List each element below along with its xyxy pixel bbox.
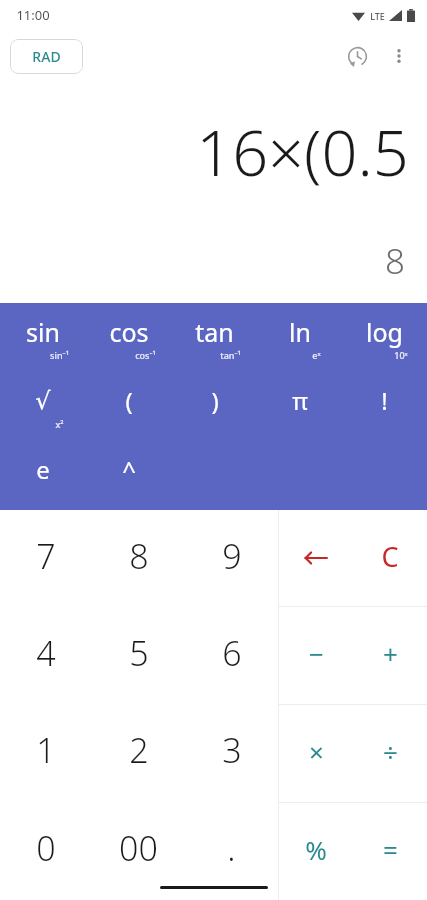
staticText: 8 (129, 533, 149, 579)
button[interactable]: log (342, 303, 427, 372)
button[interactable]: 16×(0.5 (0, 82, 427, 303)
staticText: √ (35, 387, 51, 415)
button[interactable]: sin (0, 303, 86, 372)
staticText: + (383, 636, 398, 671)
button[interactable]: 9 (185, 510, 278, 607)
button[interactable]: 6 (185, 607, 278, 704)
button[interactable]: 3 (185, 704, 278, 802)
button[interactable]: C (353, 510, 427, 606)
button[interactable]: 2 (92, 704, 185, 802)
staticText: log (366, 315, 403, 349)
staticText: ln (289, 315, 311, 349)
button[interactable]: − (279, 607, 353, 704)
staticText: ^ (122, 453, 136, 486)
staticText: 00 (119, 825, 158, 871)
staticText: e (36, 453, 50, 486)
button[interactable]: √ (0, 372, 86, 441)
button[interactable]: π (257, 372, 342, 441)
button[interactable]: More options (379, 36, 419, 76)
button[interactable]: % (279, 803, 353, 900)
button[interactable]: ( (86, 372, 172, 441)
staticText: tan (195, 315, 234, 349)
button[interactable]: + (353, 607, 427, 704)
staticText: − (309, 636, 324, 671)
staticText: 2 (129, 727, 149, 773)
staticText: 4 (36, 630, 56, 676)
staticText: 1 (36, 727, 56, 773)
button[interactable]: ln (257, 303, 342, 372)
staticText: x² (55, 418, 64, 430)
button[interactable]: 1 (0, 704, 92, 802)
button[interactable]: × (279, 705, 353, 802)
staticText: 6 (222, 630, 242, 676)
staticText: % (305, 832, 327, 867)
button[interactable]: ) (172, 372, 257, 441)
staticText: 0 (36, 825, 56, 871)
staticText: eˣ (312, 349, 321, 361)
button[interactable]: 7 (0, 510, 92, 607)
button[interactable]: ! (342, 372, 427, 441)
staticText: sin (26, 315, 60, 349)
staticText: 11:00 (16, 6, 50, 24)
button[interactable]: 00 (92, 802, 185, 900)
button[interactable]: History (335, 34, 379, 78)
staticText: 5 (129, 630, 149, 676)
staticText: cos⁻¹ (135, 349, 156, 361)
staticText: π (292, 384, 308, 417)
staticText: 8 (385, 237, 405, 285)
button[interactable]: ^ (86, 441, 172, 510)
staticText: = (383, 832, 398, 867)
staticText: ! (381, 384, 388, 417)
button[interactable]: 5 (92, 607, 185, 704)
staticText: cos (109, 315, 149, 349)
button[interactable]: Backspace (279, 510, 353, 606)
button[interactable]: ÷ (353, 705, 427, 802)
staticText: × (309, 734, 324, 769)
staticText: 7 (36, 533, 56, 579)
staticText: LTE (370, 10, 385, 22)
staticText: sin⁻¹ (50, 349, 69, 361)
button[interactable]: 8 (92, 510, 185, 607)
button[interactable]: 4 (0, 607, 92, 704)
staticText: . (227, 825, 236, 871)
staticText: ÷ (383, 734, 398, 769)
staticText: tan⁻¹ (220, 349, 241, 361)
staticText: 10ˣ (394, 349, 408, 361)
staticText: ) (211, 384, 219, 417)
button[interactable]: cos (86, 303, 172, 372)
staticText: 9 (222, 533, 242, 579)
button[interactable]: = (353, 803, 427, 900)
button[interactable]: 0 (0, 802, 92, 900)
staticText: RAD (32, 47, 61, 66)
button[interactable]: e (0, 441, 86, 510)
staticText: 16×(0.5 (196, 109, 409, 195)
staticText: 3 (222, 727, 242, 773)
button[interactable]: . (185, 802, 278, 900)
button[interactable]: tan (172, 303, 257, 372)
staticText: ( (125, 384, 133, 417)
staticText: C (381, 538, 399, 575)
button[interactable]: RAD (10, 39, 83, 74)
